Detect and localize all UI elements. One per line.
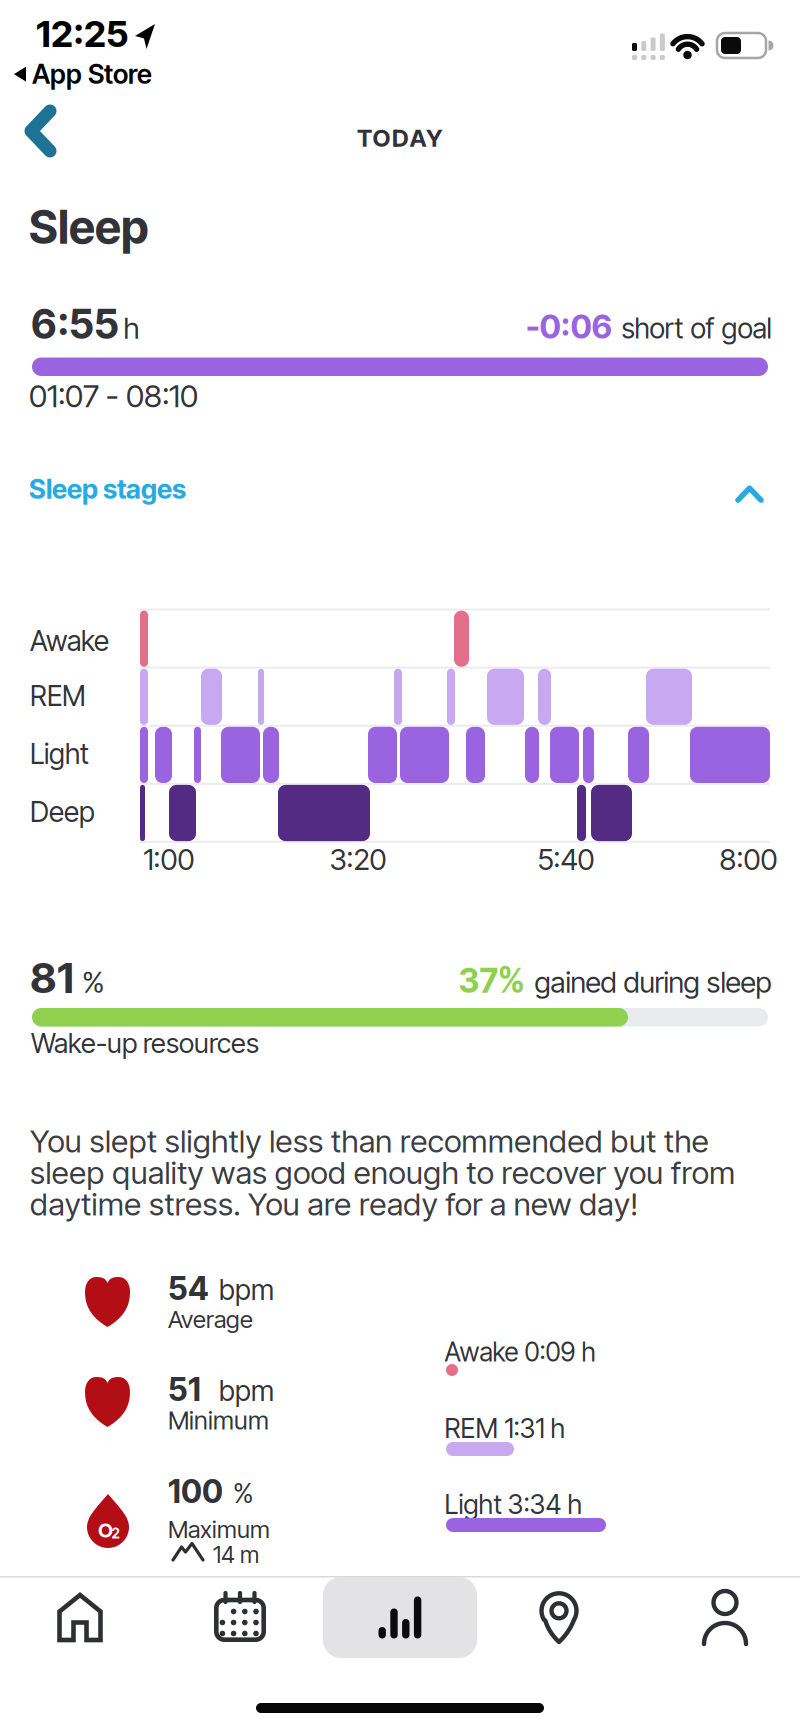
staticText: 6:55 [31,299,119,348]
staticText: REM [30,679,86,713]
staticText: 12:25 [36,11,129,56]
staticText: Average [168,1305,253,1334]
staticText: Maximum [168,1515,270,1544]
staticText: Awake 0:09 h [444,1336,595,1368]
button[interactable]: Activity [325,1577,475,1658]
staticText: 5:40 [537,842,594,877]
staticText: Light [30,737,89,771]
staticText: App Store [32,58,152,90]
button[interactable]: Back [26,107,60,155]
button[interactable]: Profile [650,1577,800,1658]
staticText: Wake-up resources [31,1026,259,1060]
button[interactable]: Back to App Store [14,58,152,90]
staticText: h [123,310,139,346]
staticText: Awake [30,624,109,658]
staticText: 37% [458,960,525,1001]
staticText: REM 1:31 h [444,1412,565,1444]
staticText: bpm [219,1273,274,1307]
button[interactable]: Explore [484,1577,634,1658]
staticText: Deep [30,795,95,829]
staticText: 14 m [213,1540,259,1569]
staticText: gained during sleep [534,965,771,1000]
staticText: 8:00 [719,842,777,877]
staticText: 1:00 [143,842,194,877]
staticText: You slept slightly less than recommended… [30,1122,709,1160]
button[interactable]: Home [5,1577,155,1658]
staticText: O [98,1518,113,1542]
staticText: 01:07 - 08:10 [29,377,198,415]
staticText: sleep quality was good enough to recover… [30,1154,735,1191]
staticText: 3:20 [329,842,386,877]
staticText: short of goal [621,311,771,345]
staticText: 54 [168,1269,209,1308]
staticText: Sleep stages [29,473,186,505]
staticText: % [82,964,104,1000]
staticText: TODAY [357,123,443,152]
staticText: bpm [219,1374,274,1408]
button[interactable]: Collapse sleep stages [0,473,800,505]
staticText: Sleep [29,199,148,255]
staticText: % [233,1477,253,1509]
staticText: 100 [168,1472,223,1511]
button[interactable]: Diary [165,1577,315,1658]
staticText: 51 [168,1370,201,1409]
staticText: 81 [30,952,74,1003]
staticText: Light 3:34 h [444,1488,582,1520]
staticText: 2 [111,1525,119,1542]
staticText: Minimum [168,1405,269,1436]
staticText: -0:06 [525,307,612,346]
staticText: daytime stress. You are ready for a new … [30,1185,638,1223]
